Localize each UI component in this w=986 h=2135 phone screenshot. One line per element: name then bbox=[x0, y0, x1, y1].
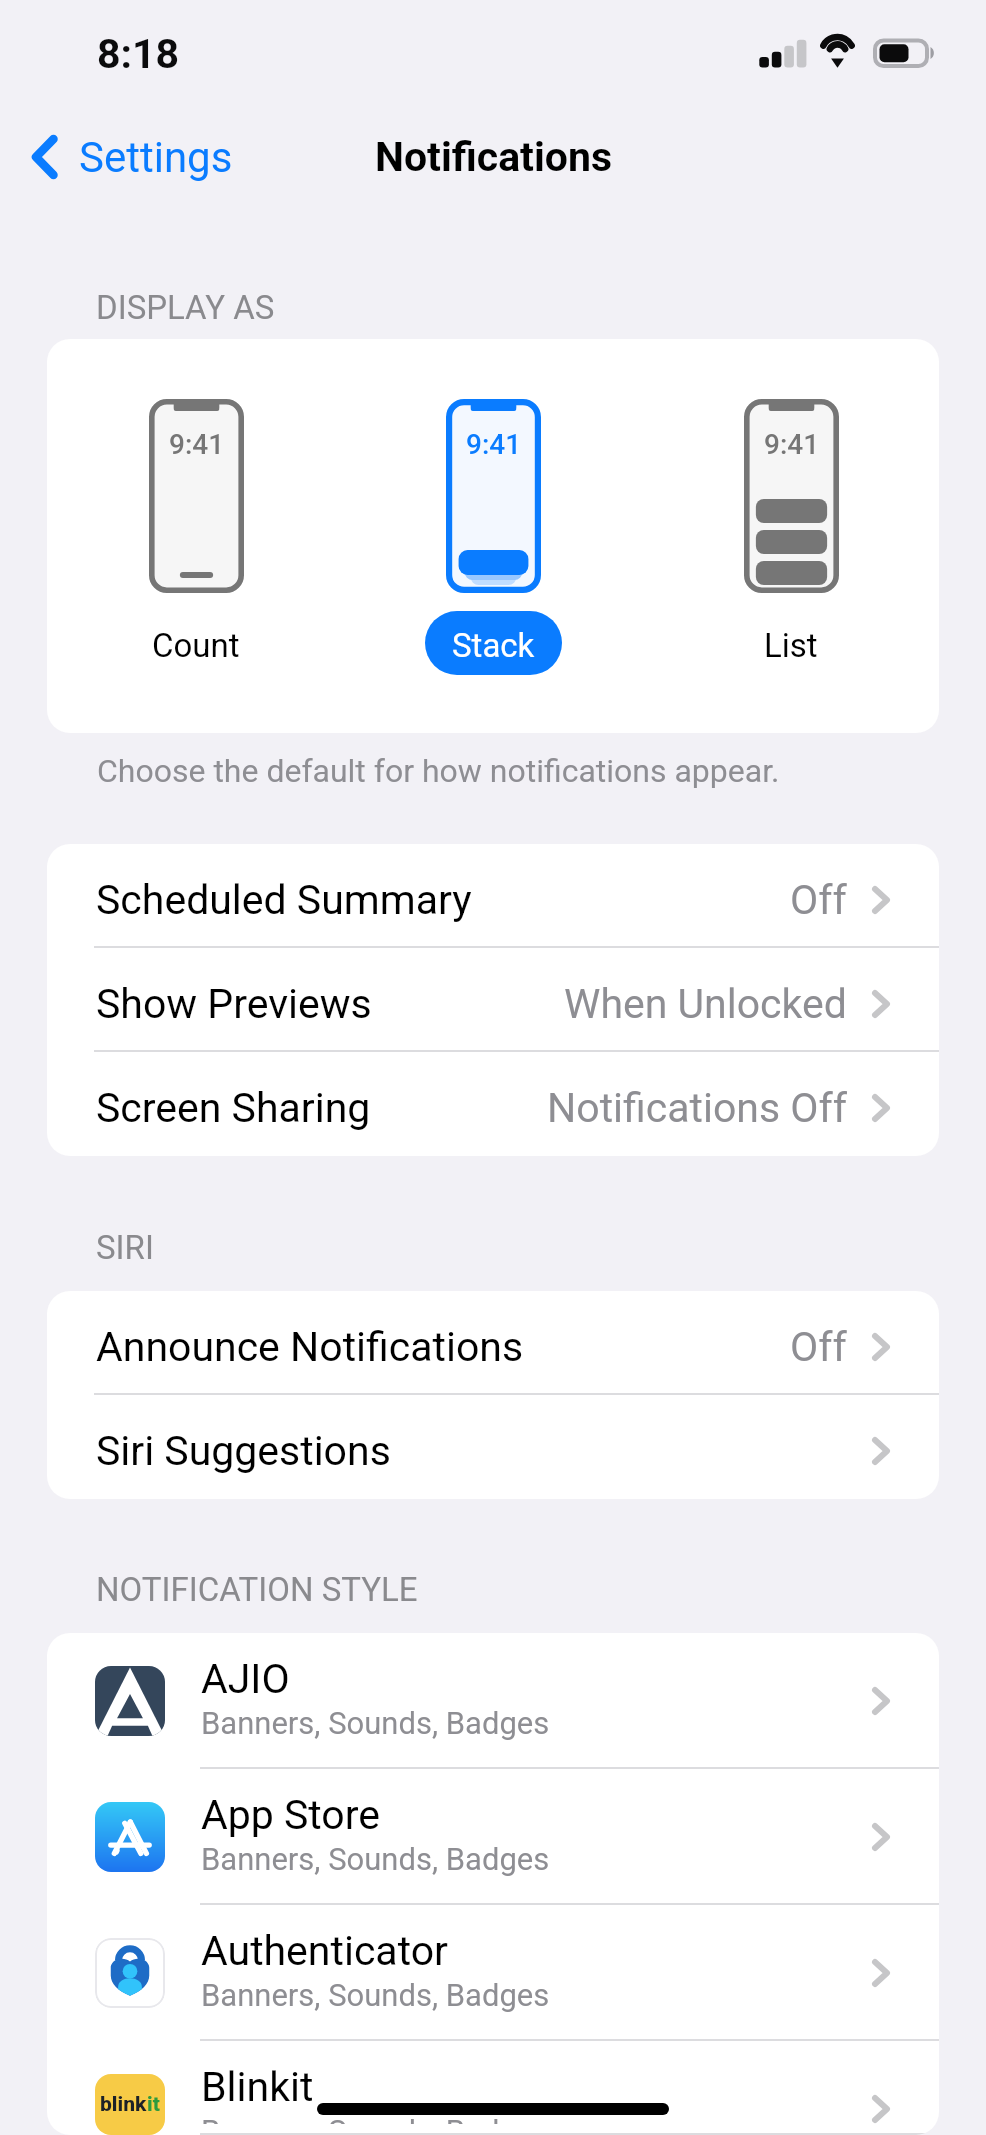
staticText: Announce Notifications bbox=[96, 1323, 524, 1371]
staticText: App Store bbox=[201, 1791, 380, 1839]
staticText: Stack bbox=[452, 626, 535, 665]
staticText: 8:18 bbox=[97, 30, 180, 78]
staticText: Count bbox=[152, 626, 240, 665]
staticText: Scheduled Summary bbox=[96, 876, 472, 924]
button[interactable]: Siri Suggestions bbox=[47, 1395, 939, 1499]
staticText: 9:41 bbox=[466, 428, 522, 461]
button[interactable]: Announce Notifications bbox=[47, 1291, 939, 1395]
button[interactable]: 9:41 bbox=[345, 399, 642, 675]
staticText: AJIO bbox=[201, 1655, 290, 1703]
button[interactable]: Show Previews bbox=[47, 948, 939, 1052]
staticText: blink bbox=[100, 2092, 147, 2117]
button[interactable]: blink bbox=[47, 2041, 939, 2135]
staticText: DISPLAY AS bbox=[96, 288, 275, 327]
staticText: 9:41 bbox=[169, 428, 225, 461]
staticText: Blinkit bbox=[201, 2063, 314, 2111]
button[interactable]: AJIO bbox=[47, 1633, 939, 1769]
staticText: Banners, Sounds, Badges bbox=[201, 1841, 550, 1877]
button[interactable]: Scheduled Summary bbox=[47, 844, 939, 948]
staticText: Show Previews bbox=[96, 980, 372, 1028]
staticText: Off bbox=[790, 876, 847, 924]
button[interactable]: Back bbox=[0, 122, 253, 191]
other: Back bbox=[33, 134, 58, 180]
staticText: Screen Sharing bbox=[96, 1084, 371, 1132]
button[interactable]: 9:41 bbox=[642, 399, 939, 675]
staticText: it bbox=[147, 2092, 160, 2117]
staticText: SIRI bbox=[96, 1228, 154, 1267]
staticText: Notifications bbox=[375, 133, 613, 181]
staticText: Banners, Sounds, Badges bbox=[201, 1977, 550, 2013]
staticText: Off bbox=[790, 1323, 847, 1371]
staticText: When Unlocked bbox=[564, 980, 847, 1028]
button[interactable]: App Store bbox=[47, 1769, 939, 1905]
button[interactable]: 9:41 bbox=[47, 399, 344, 675]
staticText: Banners, Sounds, Badges bbox=[201, 1705, 550, 1741]
staticText: Banners, Sounds, Badges bbox=[201, 2113, 550, 2124]
staticText: Notifications Off bbox=[547, 1084, 847, 1132]
staticText: NOTIFICATION STYLE bbox=[96, 1570, 418, 1609]
staticText: Choose the default for how notifications… bbox=[97, 752, 780, 790]
staticText: List bbox=[764, 626, 818, 665]
button[interactable]: Authenticator bbox=[47, 1905, 939, 2041]
button[interactable]: Screen Sharing bbox=[47, 1052, 939, 1156]
staticText: Siri Suggestions bbox=[96, 1427, 391, 1475]
staticText: 9:41 bbox=[764, 428, 820, 461]
staticText: Authenticator bbox=[201, 1927, 448, 1975]
staticText: Settings bbox=[79, 133, 233, 182]
